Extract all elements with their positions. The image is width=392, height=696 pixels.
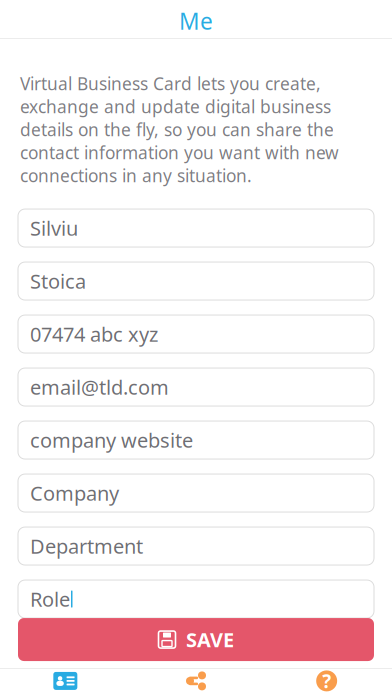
staticText: company website	[30, 427, 193, 453]
staticText: Role	[30, 586, 70, 612]
button[interactable]: email@tld.com	[18, 368, 374, 406]
button[interactable]: Share	[131, 665, 261, 696]
button[interactable]: Me	[0, 665, 131, 696]
staticText: Virtual Business Card lets you create, e…	[20, 72, 339, 187]
staticText: Me	[179, 6, 213, 36]
staticText: 07474 abc xyz	[30, 321, 158, 347]
staticText: Company	[30, 480, 119, 506]
staticText: Silviu	[30, 215, 78, 241]
button[interactable]: Stoica	[18, 262, 374, 300]
staticText: SAVE	[186, 626, 234, 653]
staticText: Stoica	[30, 268, 86, 294]
staticText: email@tld.com	[30, 374, 169, 400]
button[interactable]: SAVE	[18, 618, 374, 661]
button[interactable]: Role	[18, 580, 374, 618]
button[interactable]: company website	[18, 421, 374, 459]
button[interactable]: Silviu	[18, 209, 374, 247]
button[interactable]: Department	[18, 527, 374, 565]
button[interactable]: 07474 abc xyz	[18, 315, 374, 353]
staticText: Department	[30, 533, 143, 559]
button[interactable]: ?	[261, 665, 392, 696]
staticText: ?	[322, 668, 331, 693]
button[interactable]: Company	[18, 474, 374, 512]
